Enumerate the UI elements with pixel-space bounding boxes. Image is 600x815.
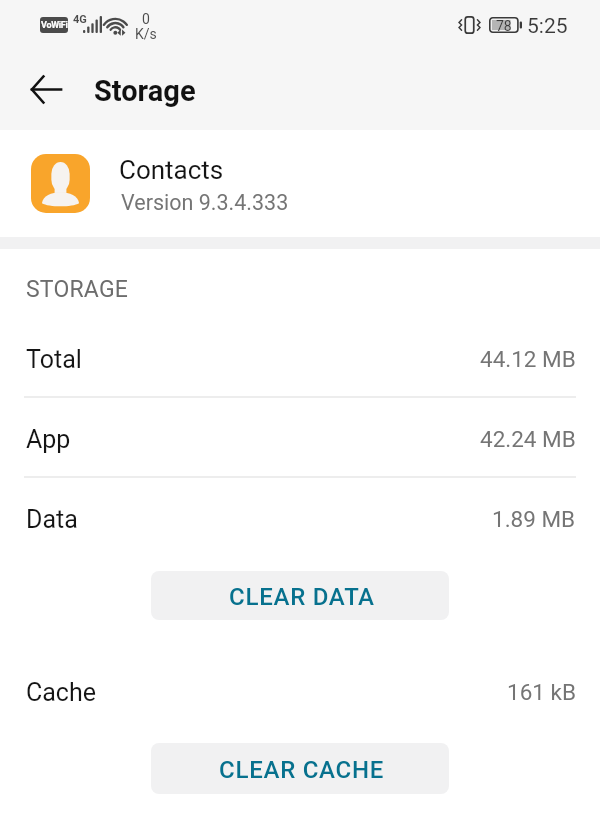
staticText: 0: [142, 11, 150, 27]
button[interactable]: Data: [0, 479, 600, 559]
button[interactable]: Total: [0, 319, 600, 399]
button[interactable]: Contacts: [0, 129, 600, 237]
staticText: Storage: [94, 74, 196, 108]
staticText: 1.89 MB: [492, 506, 576, 532]
staticText: 78: [496, 18, 512, 34]
staticText: CLEAR DATA: [229, 583, 375, 611]
button[interactable]: Cache: [0, 652, 600, 732]
staticText: 4G: [73, 13, 87, 26]
staticText: Contacts: [119, 155, 224, 185]
staticText: 161 kB: [507, 679, 576, 705]
staticText: Version 9.3.4.333: [121, 190, 289, 215]
staticText: 44.12 MB: [480, 346, 576, 372]
button[interactable]: App: [0, 399, 600, 479]
staticText: 5:25: [527, 14, 568, 39]
staticText: App: [26, 425, 71, 454]
staticText: Cache: [26, 678, 96, 707]
staticText: Data: [26, 505, 78, 534]
staticText: CLEAR CACHE: [219, 756, 385, 784]
staticText: VoWiFi: [41, 20, 68, 31]
staticText: Total: [26, 345, 82, 374]
staticText: K/s: [135, 26, 157, 42]
button[interactable]: Back: [27, 70, 65, 108]
staticText: STORAGE: [26, 276, 129, 303]
button[interactable]: CLEAR DATA: [151, 571, 449, 620]
staticText: 42.24 MB: [480, 426, 576, 452]
button[interactable]: CLEAR CACHE: [151, 743, 449, 794]
